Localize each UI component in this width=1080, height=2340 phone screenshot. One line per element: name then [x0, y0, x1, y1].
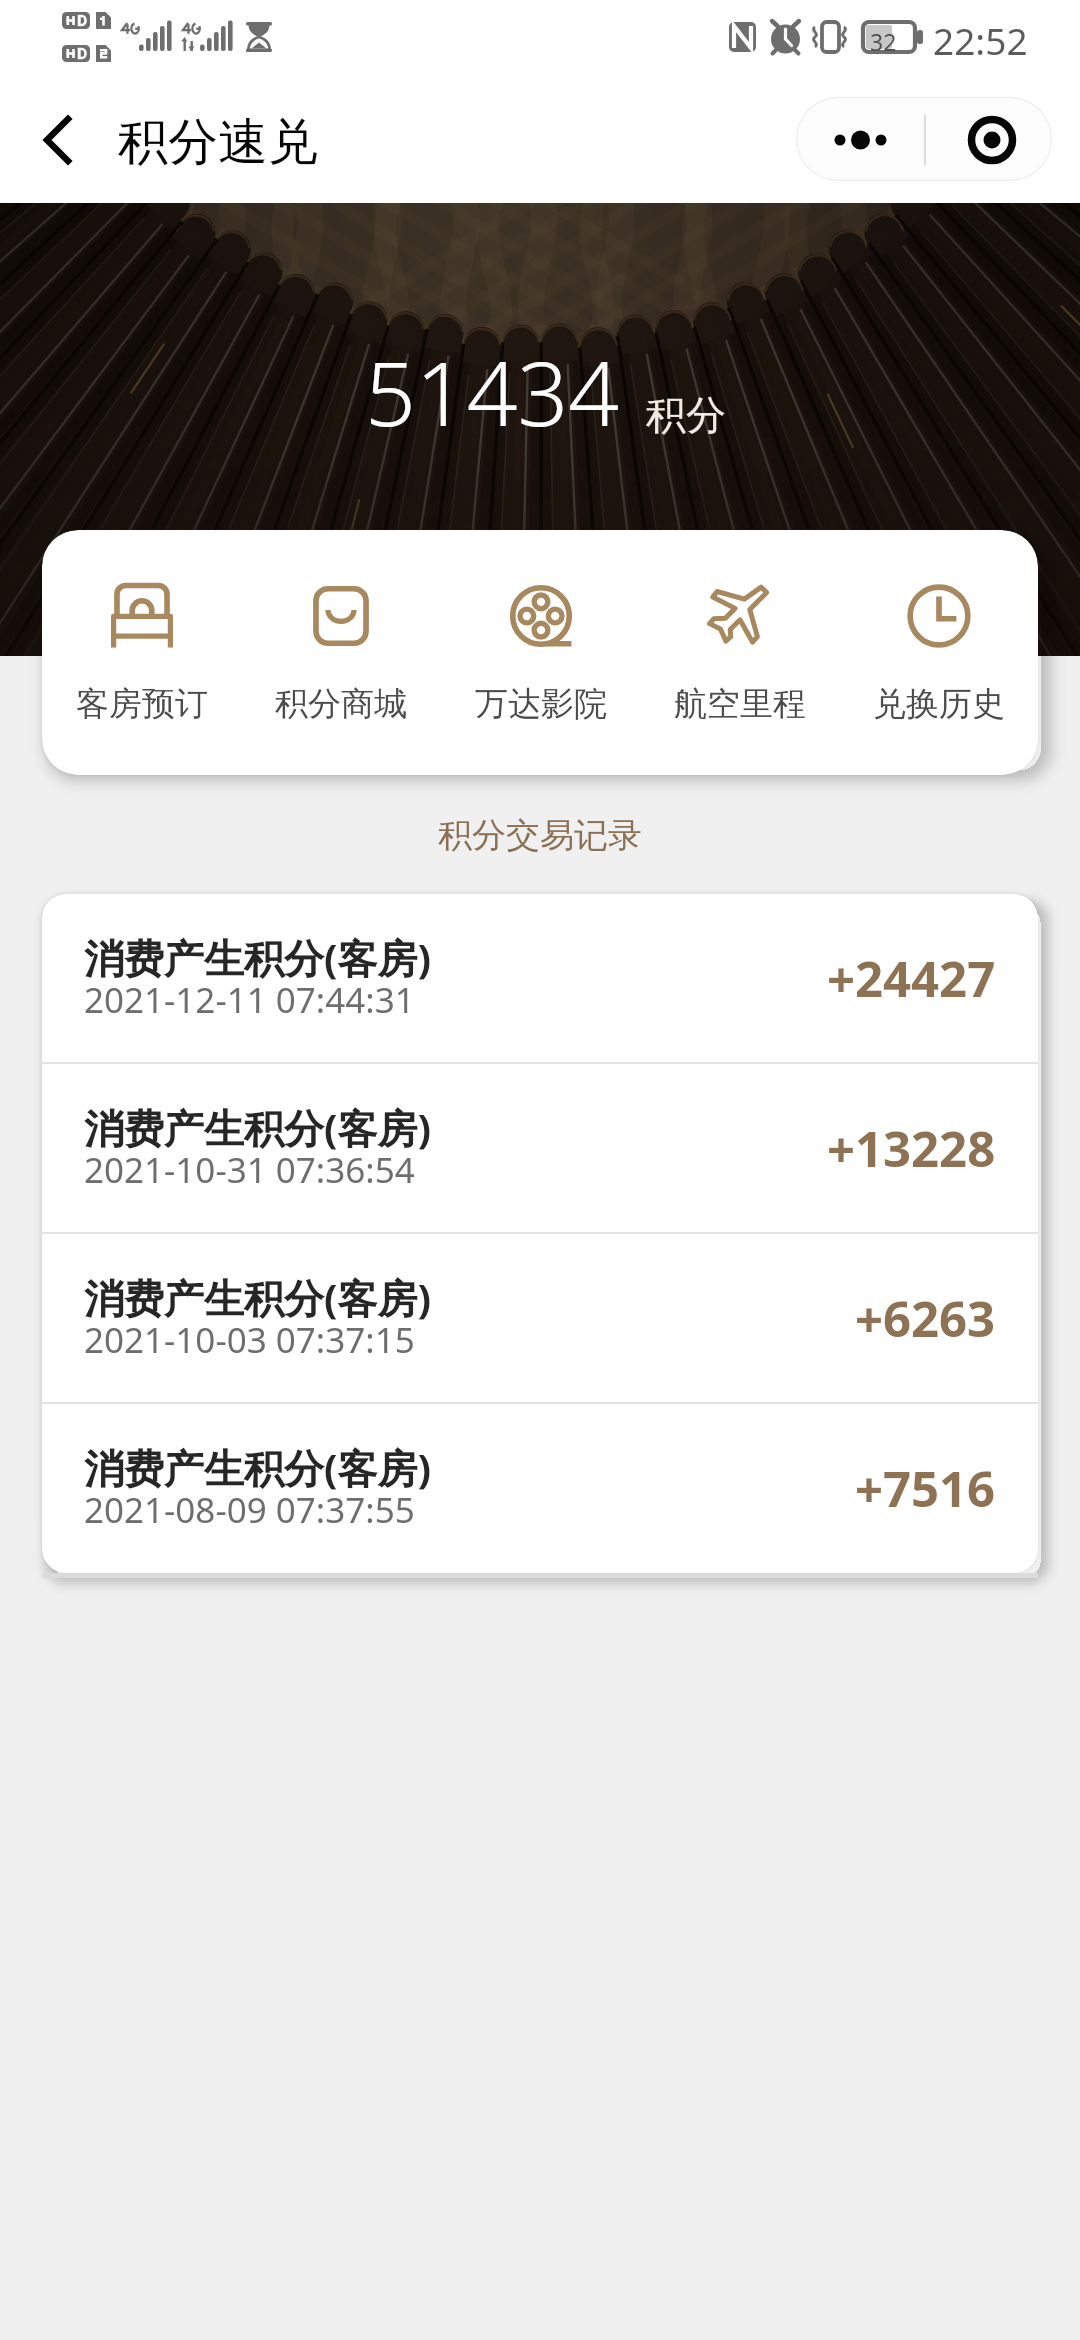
staticText: 万达影院 — [475, 683, 607, 725]
staticText: 2021-10-31 07:36:54 — [84, 1146, 415, 1194]
staticText: 积分交易记录 — [0, 814, 1080, 857]
staticText: 消费产生积分(客房) — [84, 1440, 432, 1495]
staticText: 积分商城 — [275, 683, 407, 725]
button[interactable]: 航空里程 — [640, 530, 839, 775]
staticText: 32 — [870, 26, 897, 57]
button[interactable]: 消费产生积分(客房) — [42, 1404, 1038, 1572]
staticText: 客房预订 — [76, 683, 208, 725]
staticText: 消费产生积分(客房) — [84, 930, 432, 985]
staticText: 消费产生积分(客房) — [84, 1100, 432, 1155]
button[interactable]: More and Close — [796, 97, 1052, 181]
staticText: 2021-10-03 07:37:15 — [84, 1316, 415, 1364]
staticText: 22:52 — [933, 15, 1028, 65]
button[interactable]: 兑换历史 — [839, 530, 1038, 775]
staticText: 兑换历史 — [873, 683, 1005, 725]
button[interactable]: 消费产生积分(客房) — [42, 1234, 1038, 1402]
staticText: 消费产生积分(客房) — [84, 1270, 432, 1325]
staticText: +7516 — [855, 1455, 996, 1522]
button[interactable]: 积分商城 — [241, 530, 440, 775]
staticText: +24427 — [827, 945, 996, 1012]
button[interactable]: 客房预订 — [42, 530, 241, 775]
button[interactable]: 消费产生积分(客房) — [42, 1064, 1038, 1232]
staticText: 2021-12-11 07:44:31 — [84, 976, 415, 1024]
staticText: 航空里程 — [674, 683, 806, 725]
button[interactable]: 消费产生积分(客房) — [42, 894, 1038, 1062]
staticText: +13228 — [827, 1115, 996, 1182]
staticText: 2021-08-09 07:37:55 — [84, 1486, 415, 1534]
staticText: 积分 — [646, 390, 726, 440]
staticText: 51434 — [365, 331, 620, 452]
staticText: 积分速兑 — [118, 111, 318, 174]
button[interactable]: Back — [34, 108, 92, 166]
staticText: +6263 — [855, 1285, 996, 1352]
button[interactable]: 万达影院 — [441, 530, 640, 775]
